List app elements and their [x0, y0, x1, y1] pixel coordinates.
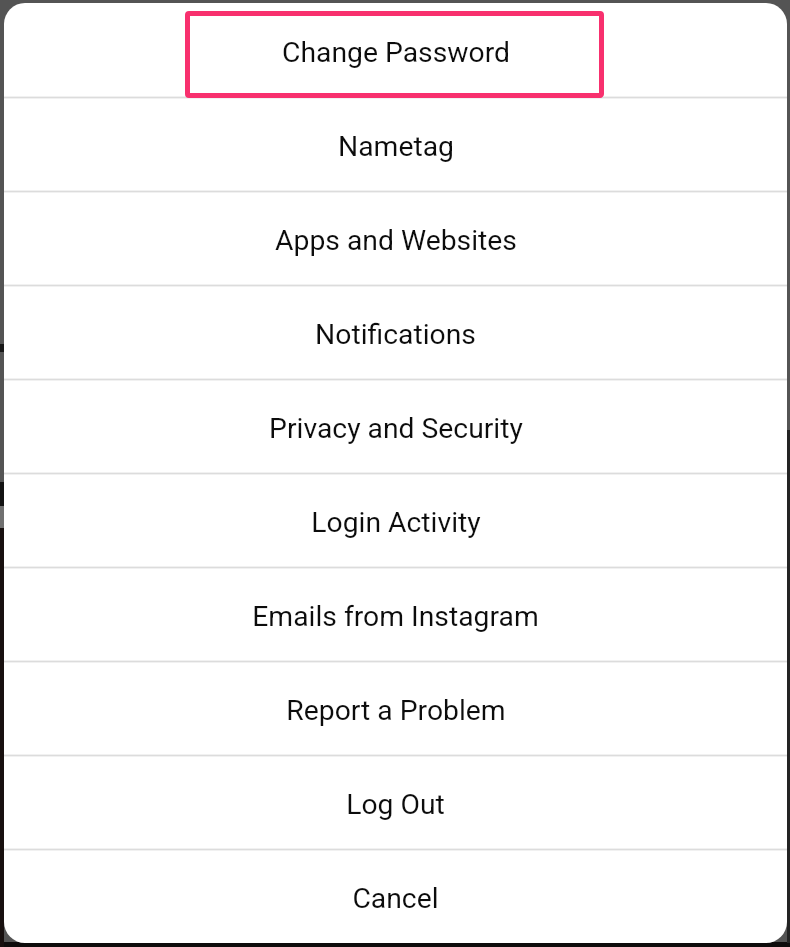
staticText: Cancel [352, 882, 439, 915]
button[interactable]: Privacy and Security [4, 380, 787, 472]
staticText: Apps and Websites [275, 224, 517, 257]
staticText: Login Activity [311, 506, 481, 539]
button[interactable]: Apps and Websites [4, 192, 787, 284]
staticText: Privacy and Security [269, 412, 523, 445]
staticText: Emails from Instagram [252, 600, 539, 633]
staticText: Nametag [338, 130, 454, 163]
button[interactable]: Nametag [4, 98, 787, 190]
staticText: Notifications [315, 318, 476, 351]
button[interactable]: Cancel [4, 850, 787, 943]
staticText: Change Password [282, 36, 510, 69]
button[interactable]: Login Activity [4, 474, 787, 566]
button[interactable]: Log Out [4, 756, 787, 848]
staticText: Report a Problem [286, 694, 506, 727]
button[interactable]: Emails from Instagram [4, 568, 787, 660]
staticText: Log Out [346, 788, 445, 821]
button[interactable]: Change Password [4, 3, 787, 97]
button[interactable]: Report a Problem [4, 662, 787, 754]
button[interactable]: Notifications [4, 286, 787, 378]
